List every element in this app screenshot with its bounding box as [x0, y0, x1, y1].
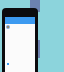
- button[interactable]: [5, 24, 35, 29]
